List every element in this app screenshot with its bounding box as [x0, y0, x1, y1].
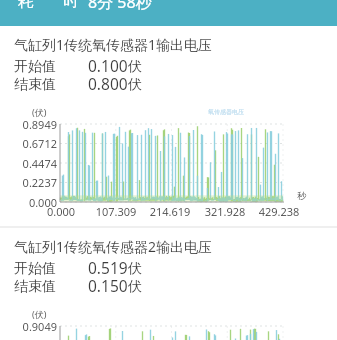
staticText: 伏: [128, 278, 142, 296]
staticText: 0.8949: [0, 117, 57, 132]
staticText: 0.519: [88, 257, 128, 278]
button[interactable]: 耗: [0, 0, 337, 26]
staticText: 0.100: [88, 55, 128, 76]
staticText: 214.619: [140, 204, 200, 219]
staticText: 气缸列1传统氧传感器2输出电压: [14, 237, 213, 256]
staticText: 气缸列1传统氧传感器1输出电压: [14, 35, 213, 54]
staticText: 耗: [18, 0, 34, 11]
staticText: 0.2237: [0, 175, 57, 190]
staticText: 107.309: [86, 204, 146, 219]
staticText: 开始值: [14, 58, 56, 76]
staticText: 0.800: [88, 73, 128, 94]
staticText: 0.9049: [0, 319, 57, 334]
staticText: 0.000: [31, 204, 91, 219]
staticText: 开始值: [14, 260, 56, 278]
staticText: 0.150: [88, 275, 128, 296]
staticText: 伏: [128, 260, 142, 278]
button[interactable]: 气缸列1传统氧传感器2输出电压: [0, 228, 337, 340]
staticText: 0.6712: [0, 136, 57, 151]
staticText: 结束值: [14, 278, 56, 296]
staticText: 321.928: [195, 204, 255, 219]
button[interactable]: 气缸列1传统氧传感器1输出电压: [0, 26, 337, 228]
staticText: 429.238: [249, 204, 309, 219]
staticText: 0.000: [0, 195, 57, 210]
staticText: (伏): [32, 308, 47, 320]
staticText: 氧传感器电压: [208, 108, 244, 116]
staticText: 秒: [297, 190, 306, 201]
staticText: 伏: [128, 58, 142, 76]
staticText: 结束值: [14, 76, 56, 94]
staticText: 伏: [128, 76, 142, 94]
staticText: 0.4474: [0, 156, 57, 171]
staticText: (伏): [32, 106, 47, 118]
staticText: 8分 58秒: [88, 0, 152, 13]
staticText: 时: [63, 0, 79, 11]
